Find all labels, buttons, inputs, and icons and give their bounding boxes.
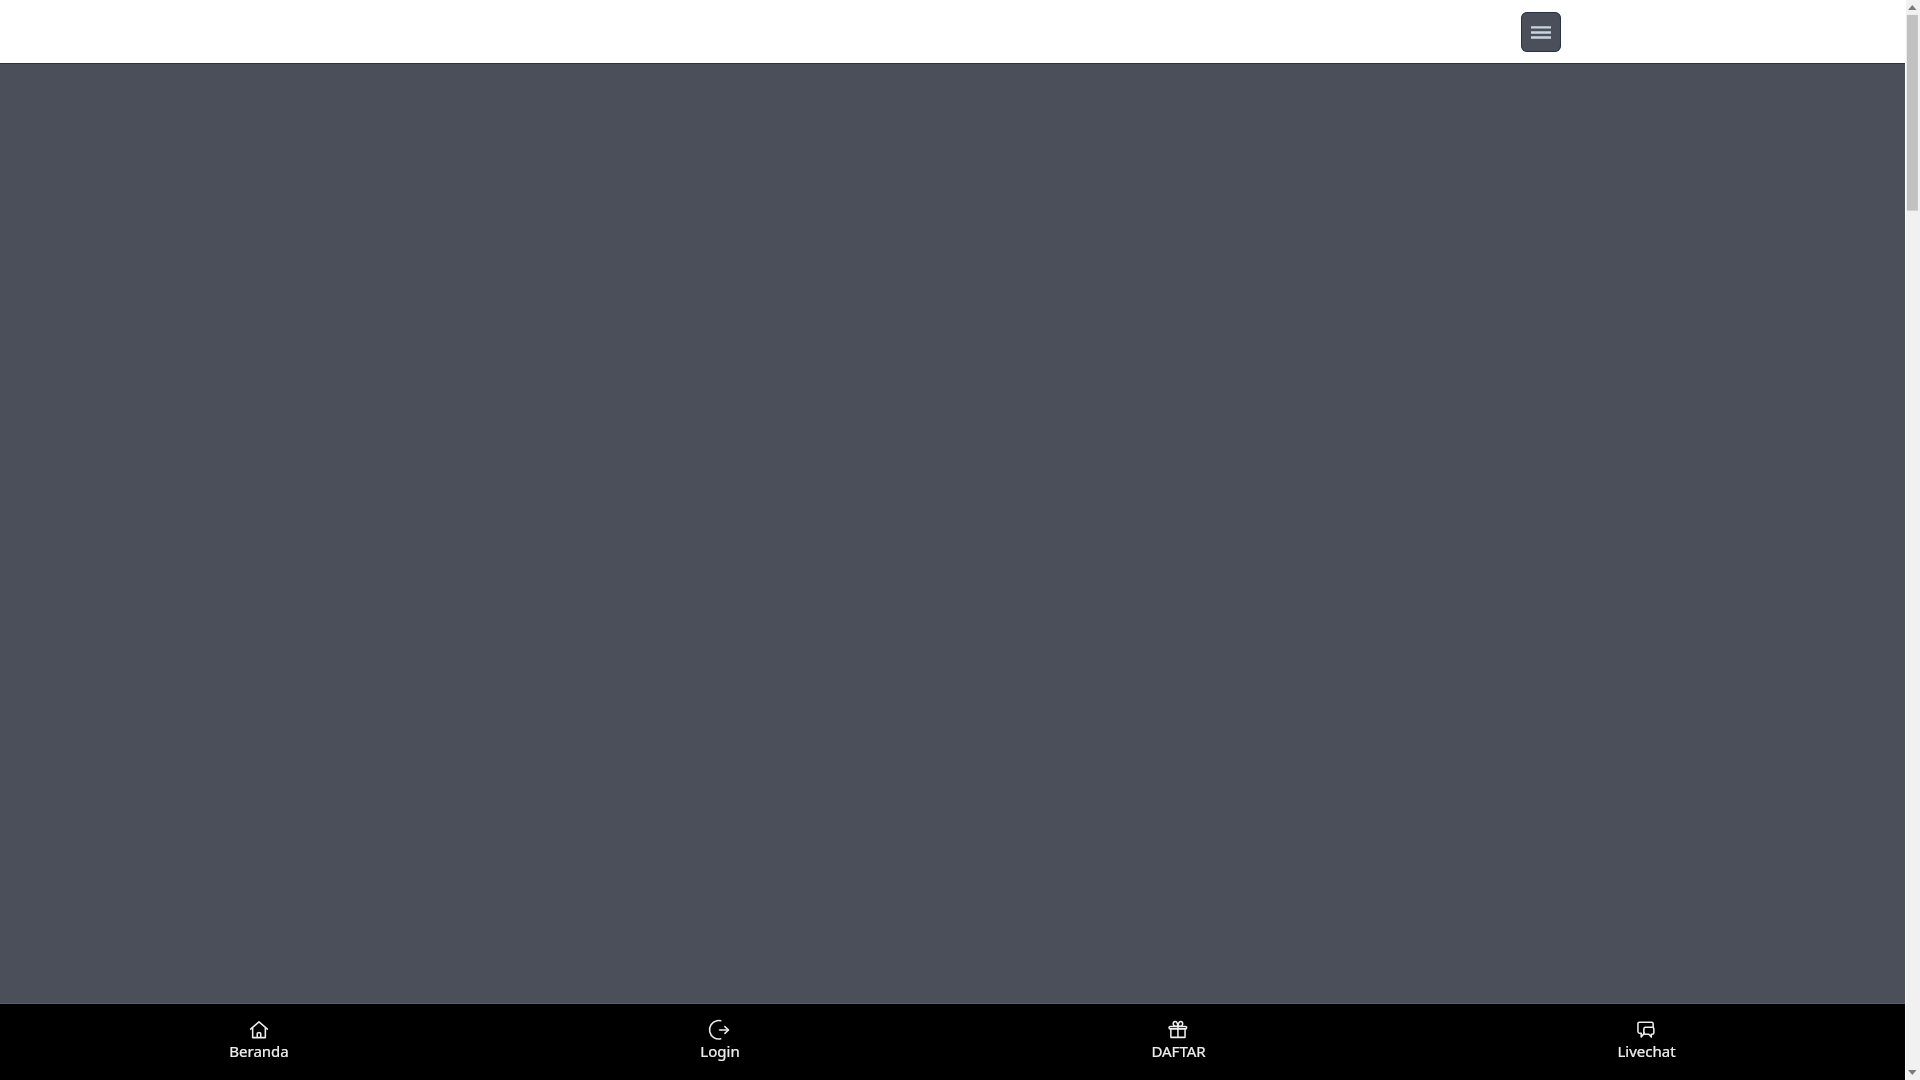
button[interactable]: Beranda, home bbox=[179, 1004, 339, 1080]
staticText: Login bbox=[700, 1041, 740, 1061]
button[interactable]: Login bbox=[640, 1004, 800, 1080]
button[interactable]: Open navigation menu bbox=[1521, 12, 1561, 52]
button[interactable]: Scroll bar bbox=[1905, 0, 1920, 1080]
staticText: Livechat bbox=[1617, 1041, 1676, 1061]
staticText: DAFTAR bbox=[1151, 1041, 1206, 1061]
staticText: Beranda bbox=[229, 1041, 289, 1061]
button[interactable]: Livechat bbox=[1566, 1004, 1726, 1080]
button[interactable]: Daftar, register bbox=[1098, 1004, 1258, 1080]
